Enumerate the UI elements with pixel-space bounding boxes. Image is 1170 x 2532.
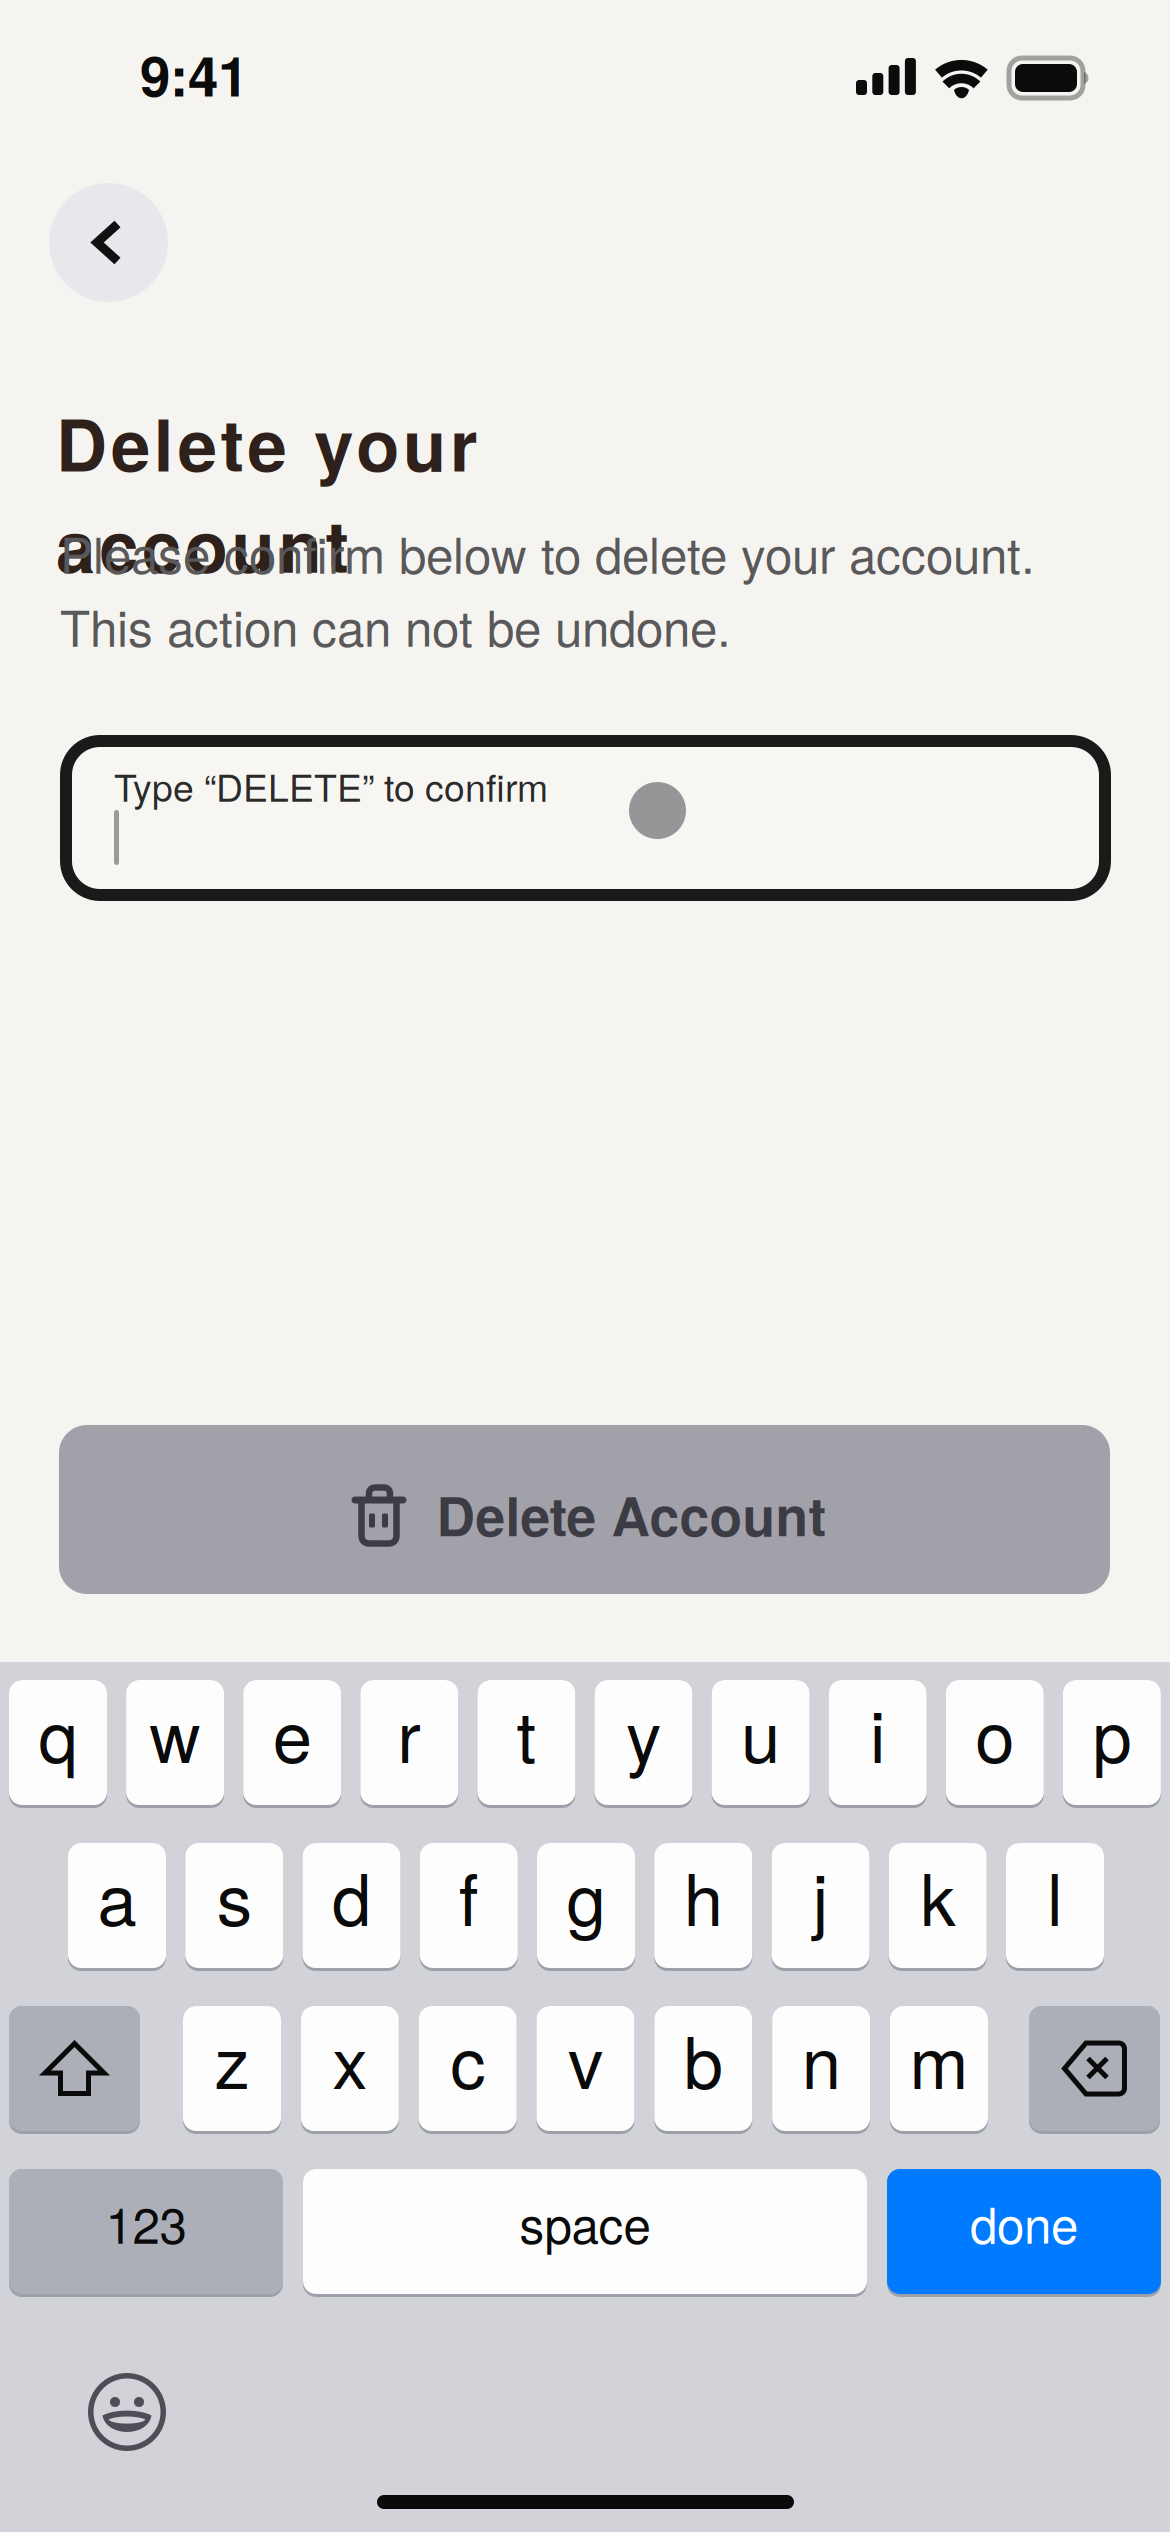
staticText: x [332, 2008, 367, 2109]
button[interactable]: Back [49, 183, 168, 302]
staticText: done [970, 2187, 1078, 2258]
staticText: i [870, 1682, 886, 1783]
staticText: m [909, 2008, 968, 2109]
staticText: Please confirm below to delete your acco… [60, 517, 1035, 588]
button[interactable]: m [890, 2006, 988, 2131]
staticText: a [97, 1845, 136, 1946]
staticText: v [568, 2008, 603, 2109]
button[interactable]: n [772, 2006, 870, 2131]
staticText: l [1047, 1845, 1063, 1946]
button[interactable]: Delete Account [59, 1425, 1110, 1594]
button[interactable]: v [536, 2006, 634, 2131]
button[interactable]: Delete [1029, 2006, 1160, 2131]
button[interactable]: q [9, 1680, 107, 1805]
button[interactable]: d [302, 1843, 400, 1968]
button[interactable]: h [654, 1843, 752, 1968]
staticText: Delete Account [436, 1476, 826, 1553]
button[interactable]: Shift [9, 2006, 140, 2131]
staticText: e [273, 1682, 312, 1783]
staticText: 9:41 [140, 35, 248, 113]
staticText: r [397, 1682, 421, 1783]
button[interactable]: 123 [9, 2169, 283, 2294]
staticText: c [450, 2008, 485, 2109]
button[interactable]: j [771, 1843, 869, 1968]
button[interactable]: l [1006, 1843, 1104, 1968]
staticText: b [684, 2008, 723, 2109]
staticText: y [626, 1682, 661, 1783]
staticText: h [684, 1845, 723, 1946]
button[interactable]: x [301, 2006, 399, 2131]
button[interactable]: t [477, 1680, 575, 1805]
button[interactable]: f [420, 1843, 518, 1968]
button[interactable]: u [712, 1680, 810, 1805]
button[interactable]: c [419, 2006, 517, 2131]
button[interactable]: space [303, 2169, 867, 2294]
staticText: 123 [105, 2187, 186, 2258]
staticText: t [516, 1682, 536, 1783]
staticText: Type “DELETE” to confirm [114, 759, 548, 812]
staticText: q [38, 1682, 77, 1783]
staticText: Delete your account [56, 392, 798, 493]
button[interactable]: o [946, 1680, 1044, 1805]
button[interactable]: g [537, 1843, 635, 1968]
button[interactable]: y [594, 1680, 692, 1805]
button[interactable]: b [654, 2006, 752, 2131]
button[interactable]: r [360, 1680, 458, 1805]
button[interactable]: i [829, 1680, 927, 1805]
staticText: This action can not be undone. [60, 590, 731, 661]
button[interactable]: s [185, 1843, 283, 1968]
staticText: g [566, 1845, 605, 1946]
button[interactable]: e [243, 1680, 341, 1805]
staticText: z [214, 2008, 249, 2109]
staticText: w [150, 1682, 201, 1783]
button[interactable]: p [1063, 1680, 1161, 1805]
staticText: f [459, 1845, 479, 1946]
staticText: j [812, 1845, 828, 1946]
staticText: space [519, 2187, 650, 2258]
button[interactable]: Emoji keyboard [88, 2373, 166, 2451]
button[interactable]: w [126, 1680, 224, 1805]
staticText: p [1092, 1682, 1131, 1783]
staticText: n [802, 2008, 841, 2109]
staticText: k [920, 1845, 955, 1946]
staticText: s [217, 1845, 252, 1946]
staticText: d [332, 1845, 371, 1946]
button[interactable]: k [889, 1843, 987, 1968]
button[interactable]: a [68, 1843, 166, 1968]
button[interactable]: z [183, 2006, 281, 2131]
button[interactable]: done [887, 2169, 1161, 2294]
staticText: o [975, 1682, 1014, 1783]
staticText: u [741, 1682, 780, 1783]
